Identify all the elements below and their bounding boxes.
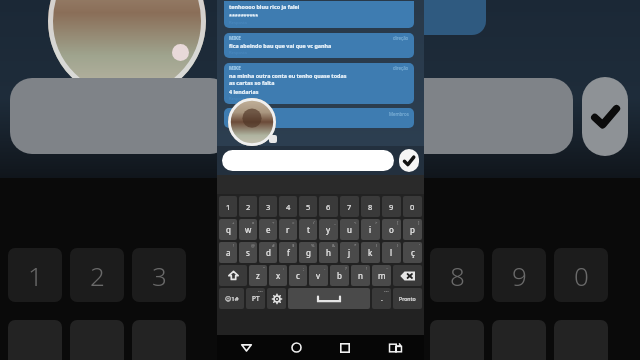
button[interactable]: !	[219, 242, 237, 263]
button[interactable]: MIKE	[224, 63, 414, 104]
button[interactable]: ÷	[259, 219, 277, 240]
button[interactable]: ☺1#	[219, 288, 244, 309]
button[interactable]: 0	[403, 196, 422, 217]
button[interactable]: =	[279, 219, 297, 240]
staticText: _	[334, 220, 336, 226]
staticText: 1	[28, 258, 43, 293]
staticText: ÷	[272, 220, 275, 226]
button[interactable]: 8	[361, 196, 380, 217]
button[interactable]: Space	[288, 288, 370, 309]
staticText: p	[410, 224, 415, 235]
button[interactable]: Membros	[224, 108, 414, 128]
staticText: h	[326, 247, 331, 258]
staticText: 8	[368, 202, 373, 212]
button[interactable]: 2	[239, 196, 257, 217]
button[interactable]: 5	[299, 196, 317, 217]
button[interactable]: 1	[219, 196, 237, 217]
staticText: .	[381, 294, 383, 304]
staticText: j	[348, 247, 351, 258]
staticText: 4	[286, 202, 291, 212]
button[interactable]: @	[239, 242, 257, 263]
staticText: %	[311, 243, 315, 249]
button[interactable]: 3	[259, 196, 277, 217]
staticText: ç	[411, 247, 415, 258]
staticText: Pronto	[399, 295, 416, 302]
staticText: 8	[450, 258, 465, 293]
button[interactable]: •••	[372, 288, 391, 309]
button[interactable]: Back	[226, 335, 266, 360]
button[interactable]: Settings	[267, 288, 286, 309]
staticText: 3	[266, 202, 271, 212]
staticText: ]	[418, 220, 420, 226]
staticText: ?	[345, 266, 347, 272]
button[interactable]: $	[279, 242, 297, 263]
staticText: c	[296, 270, 300, 281]
button[interactable]: ;	[289, 265, 307, 286]
button[interactable]: Split screen	[375, 335, 415, 360]
button[interactable]: 4	[279, 196, 297, 217]
button[interactable]: Recent apps	[325, 335, 365, 360]
staticText: @	[251, 243, 255, 249]
button[interactable]: :	[269, 265, 287, 286]
button[interactable]: 9	[382, 196, 401, 217]
staticText: #	[272, 243, 275, 249]
staticText: na minha outra conta eu tenho quase toda…	[229, 72, 347, 79]
staticText: (	[376, 243, 378, 249]
button[interactable]: MIKE	[224, 33, 414, 58]
staticText: tenhoooo bluu rico ja falei	[229, 3, 300, 10]
staticText: ☺1#	[225, 295, 239, 303]
staticText: u	[347, 224, 352, 235]
button[interactable]	[222, 150, 394, 171]
button[interactable]: _	[319, 219, 338, 240]
button[interactable]: )	[382, 242, 401, 263]
staticText: m	[378, 270, 386, 281]
staticText: ;	[303, 266, 305, 272]
button[interactable]: Pronto	[393, 288, 422, 309]
button[interactable]: >	[361, 219, 380, 240]
staticText: f	[287, 247, 290, 258]
button[interactable]: Shift	[219, 265, 247, 286]
button[interactable]: %	[299, 242, 317, 263]
staticText: n	[358, 270, 363, 281]
staticText: :	[283, 266, 285, 272]
staticText: r	[286, 224, 290, 235]
staticText: <	[354, 220, 357, 226]
button[interactable]: "	[249, 265, 267, 286]
button[interactable]: <	[340, 219, 359, 240]
button[interactable]: x	[239, 219, 257, 240]
staticText: )	[397, 243, 399, 249]
button[interactable]: 7	[340, 196, 359, 217]
button[interactable]: *	[340, 242, 359, 263]
staticText: 3	[152, 258, 167, 293]
staticText: b	[337, 270, 342, 281]
staticText: •••	[258, 289, 263, 295]
button[interactable]: (	[361, 242, 380, 263]
staticText: 7	[347, 202, 352, 212]
button[interactable]: Home	[276, 335, 316, 360]
button[interactable]: tenhoooo bluu rico ja falei	[224, 1, 414, 28]
staticText: =	[292, 220, 295, 226]
button[interactable]: Send	[399, 149, 419, 172]
button[interactable]: Backspace	[393, 265, 422, 286]
staticText: o	[389, 224, 394, 235]
button[interactable]: '	[403, 242, 422, 263]
button[interactable]: [	[382, 219, 401, 240]
button[interactable]: -	[309, 265, 328, 286]
button[interactable]: +	[219, 219, 237, 240]
button[interactable]: ?	[330, 265, 349, 286]
staticText: /	[313, 220, 315, 226]
button[interactable]: #	[259, 242, 277, 263]
button[interactable]: !	[351, 265, 370, 286]
staticText: g	[306, 247, 311, 258]
button[interactable]: 6	[319, 196, 338, 217]
staticText: -	[324, 266, 326, 272]
staticText: *	[354, 243, 357, 249]
button[interactable]: ]	[403, 219, 422, 240]
staticText: >	[375, 220, 378, 226]
staticText: k	[368, 247, 373, 258]
button[interactable]: ~	[372, 265, 391, 286]
button[interactable]: /	[299, 219, 317, 240]
button[interactable]: •••	[246, 288, 265, 309]
button[interactable]: &	[319, 242, 338, 263]
